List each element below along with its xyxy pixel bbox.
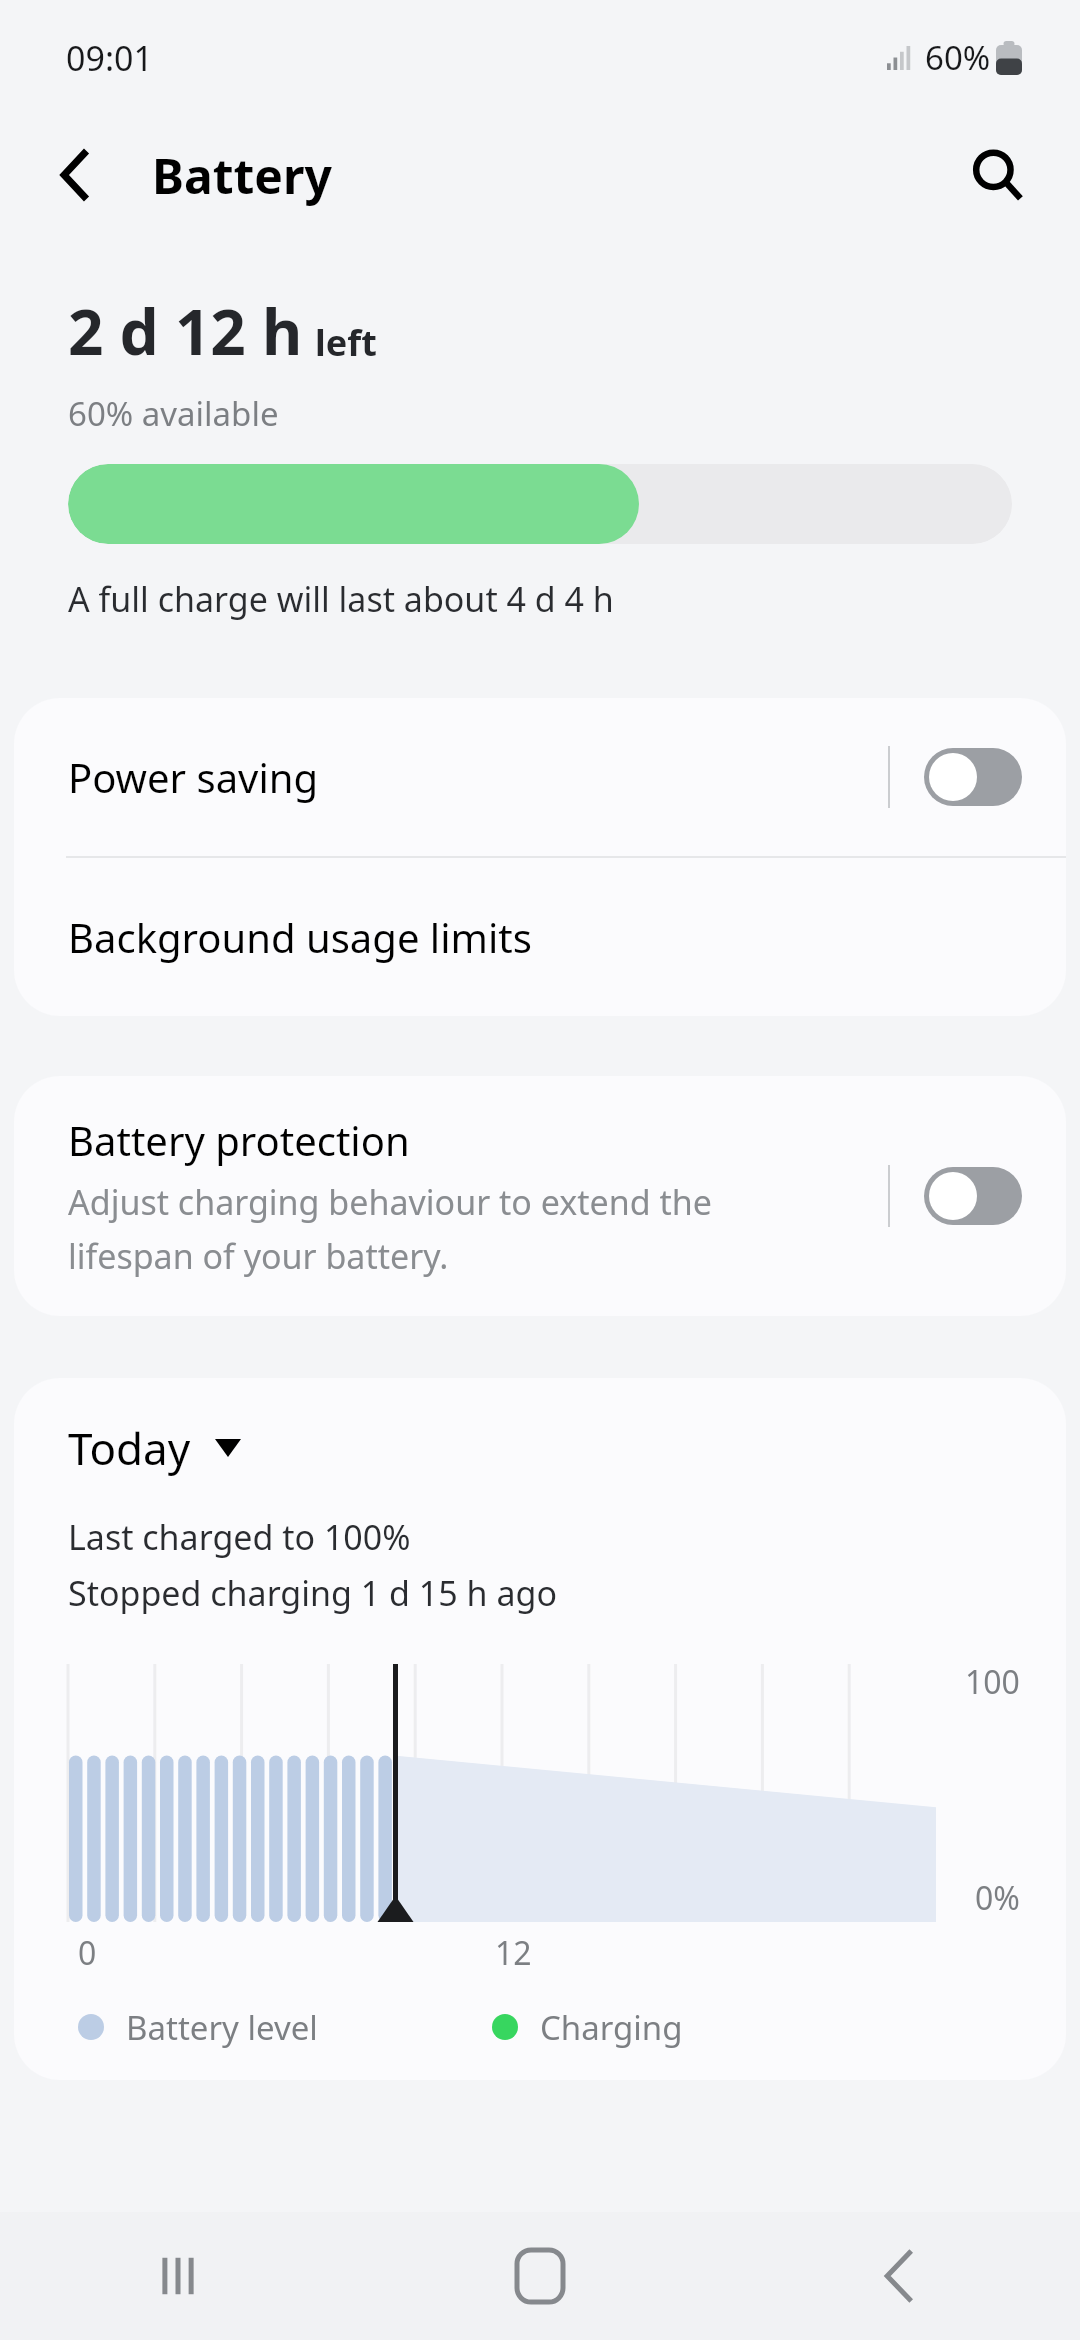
button[interactable]: Search xyxy=(958,136,1036,214)
staticText: 100 xyxy=(965,1660,1020,1704)
staticText: Battery protection xyxy=(68,1113,410,1167)
staticText: 12 xyxy=(495,1931,532,1975)
staticText: 2 d 12 h xyxy=(68,289,303,373)
staticText: Power saving xyxy=(68,750,888,804)
staticText: Background usage limits xyxy=(68,910,532,964)
staticText: Today xyxy=(68,1418,191,1478)
staticText: A full charge will last about 4 d 4 h xyxy=(68,576,614,622)
button[interactable]: Battery protection xyxy=(14,1076,1066,1316)
staticText: Battery xyxy=(152,143,332,208)
button[interactable]: Back xyxy=(720,2212,1080,2340)
staticText: Battery level xyxy=(126,2005,318,2050)
button[interactable]: Battery protection toggle xyxy=(924,1167,1022,1225)
staticText: 0 xyxy=(78,1931,97,1975)
staticText: Last charged to 100% xyxy=(68,1514,411,1560)
staticText: 60% xyxy=(925,35,991,80)
staticText: 09:01 xyxy=(66,35,153,81)
button[interactable]: Back xyxy=(40,138,114,212)
staticText: 0% xyxy=(975,1876,1020,1920)
staticText: Charging xyxy=(540,2005,683,2050)
staticText: 60% available xyxy=(68,391,279,436)
staticText: Stopped charging 1 d 15 h ago xyxy=(68,1570,557,1616)
button[interactable]: Home xyxy=(360,2212,720,2340)
button[interactable]: Today xyxy=(68,1418,241,1478)
staticText: left xyxy=(315,318,377,367)
button[interactable]: Power saving toggle xyxy=(924,748,1022,806)
button[interactable]: Recent apps xyxy=(0,2212,360,2340)
staticText: lifespan of your battery. xyxy=(68,1233,449,1279)
button[interactable]: Background usage limits xyxy=(14,858,1066,1016)
staticText: Adjust charging behaviour to extend the xyxy=(68,1179,712,1225)
button[interactable]: Power saving xyxy=(14,698,1066,856)
